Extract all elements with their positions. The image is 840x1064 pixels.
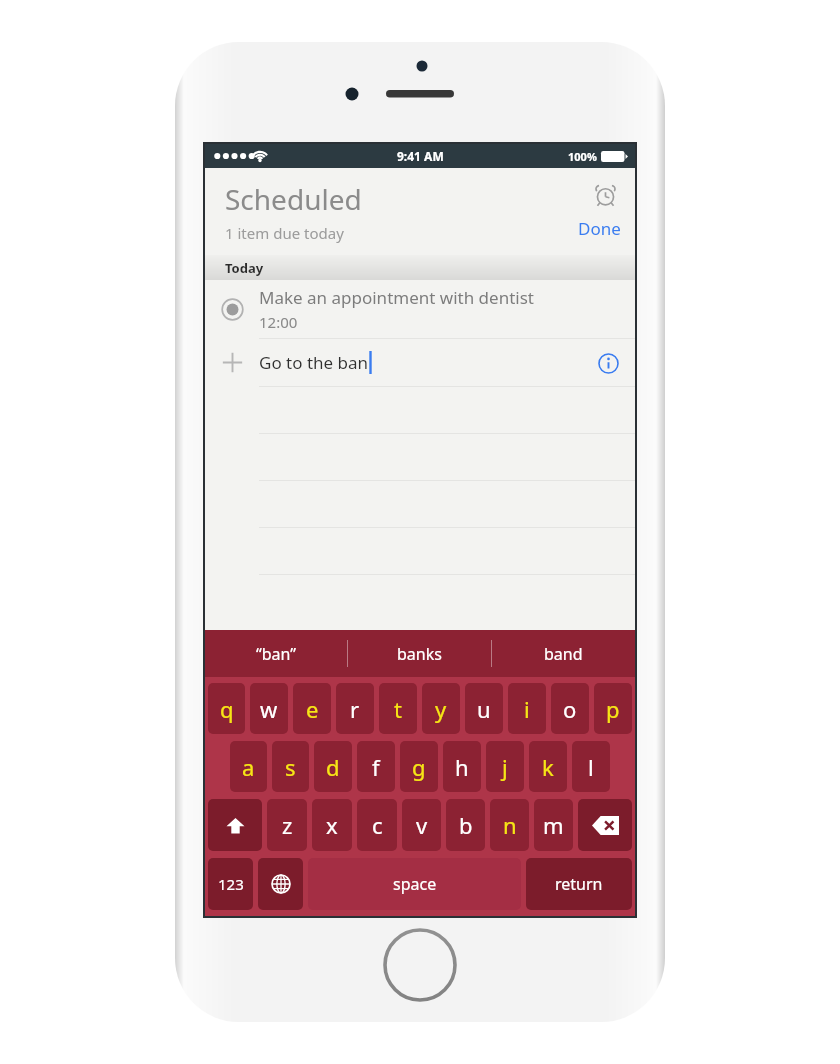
button[interactable]: v bbox=[402, 799, 441, 851]
staticText: l bbox=[588, 752, 594, 782]
button[interactable]: r bbox=[336, 683, 374, 734]
button[interactable]: Go to the ban bbox=[205, 339, 635, 386]
staticText: b bbox=[459, 810, 473, 840]
staticText: w bbox=[260, 694, 278, 724]
button[interactable]: Change keyboard bbox=[258, 858, 303, 910]
button[interactable]: Make an appointment with dentist bbox=[205, 280, 635, 338]
staticText: j bbox=[502, 752, 508, 782]
staticText: r bbox=[350, 694, 360, 724]
staticText: a bbox=[242, 752, 255, 782]
button[interactable]: Backspace bbox=[578, 799, 632, 851]
button[interactable]: x bbox=[312, 799, 352, 851]
staticText: m bbox=[543, 810, 564, 840]
button[interactable]: i bbox=[508, 683, 546, 734]
button[interactable]: return bbox=[526, 858, 632, 910]
button[interactable]: q bbox=[208, 683, 245, 734]
button[interactable]: f bbox=[357, 741, 395, 792]
staticText: s bbox=[285, 752, 296, 782]
button[interactable]: w bbox=[250, 683, 288, 734]
staticText: k bbox=[542, 752, 554, 782]
button[interactable]: d bbox=[314, 741, 352, 792]
staticText: return bbox=[555, 873, 603, 895]
button[interactable]: m bbox=[534, 799, 573, 851]
staticText: u bbox=[477, 694, 491, 724]
button[interactable]: z bbox=[267, 799, 307, 851]
staticText: f bbox=[372, 752, 380, 782]
staticText: p bbox=[606, 694, 620, 724]
button[interactable]: g bbox=[400, 741, 438, 792]
staticText: 1 item due today bbox=[225, 223, 344, 243]
staticText: y bbox=[435, 694, 447, 724]
staticText: q bbox=[220, 694, 234, 724]
button[interactable]: t bbox=[379, 683, 417, 734]
button[interactable]: band bbox=[492, 630, 635, 677]
staticText: z bbox=[282, 810, 293, 840]
button[interactable]: l bbox=[572, 741, 610, 792]
button[interactable]: Done bbox=[572, 214, 627, 243]
staticText: Done bbox=[578, 217, 621, 240]
button[interactable]: banks bbox=[348, 630, 491, 677]
staticText: “ban” bbox=[256, 643, 297, 665]
staticText: n bbox=[503, 810, 517, 840]
staticText: space bbox=[393, 873, 437, 895]
button[interactable]: c bbox=[357, 799, 397, 851]
button[interactable]: n bbox=[490, 799, 529, 851]
staticText: e bbox=[306, 694, 319, 724]
button[interactable]: o bbox=[551, 683, 589, 734]
staticText: g bbox=[412, 752, 426, 782]
button[interactable]: Alarm bbox=[588, 177, 622, 211]
staticText: v bbox=[416, 810, 428, 840]
button[interactable]: 123 bbox=[208, 858, 253, 910]
button[interactable]: b bbox=[446, 799, 485, 851]
button[interactable]: e bbox=[293, 683, 331, 734]
staticText: 9:41 AM bbox=[397, 148, 444, 164]
button[interactable]: s bbox=[272, 741, 309, 792]
button[interactable]: j bbox=[486, 741, 524, 792]
staticText: d bbox=[326, 752, 340, 782]
button[interactable]: space bbox=[308, 858, 521, 910]
staticText: x bbox=[326, 810, 338, 840]
button[interactable]: Shift bbox=[208, 799, 262, 851]
button[interactable]: “ban” bbox=[205, 630, 347, 677]
button[interactable]: h bbox=[443, 741, 481, 792]
staticText: c bbox=[372, 810, 383, 840]
staticText: 123 bbox=[218, 874, 244, 894]
button[interactable]: y bbox=[422, 683, 460, 734]
button[interactable]: Details bbox=[594, 349, 622, 377]
staticText: h bbox=[455, 752, 469, 782]
staticText: o bbox=[563, 694, 577, 724]
staticText: band bbox=[544, 643, 583, 665]
button[interactable]: u bbox=[465, 683, 503, 734]
staticText: t bbox=[394, 694, 402, 724]
staticText: Today bbox=[225, 259, 264, 277]
staticText: Go to the ban bbox=[259, 351, 369, 374]
button[interactable]: a bbox=[230, 741, 267, 792]
staticText: Make an appointment with dentist bbox=[259, 286, 534, 309]
button[interactable]: k bbox=[529, 741, 567, 792]
staticText: 100% bbox=[568, 149, 597, 164]
staticText: Scheduled bbox=[225, 180, 362, 218]
staticText: 12:00 bbox=[259, 312, 298, 332]
staticText: banks bbox=[397, 643, 442, 665]
button[interactable]: p bbox=[594, 683, 632, 734]
staticText: i bbox=[524, 694, 530, 724]
